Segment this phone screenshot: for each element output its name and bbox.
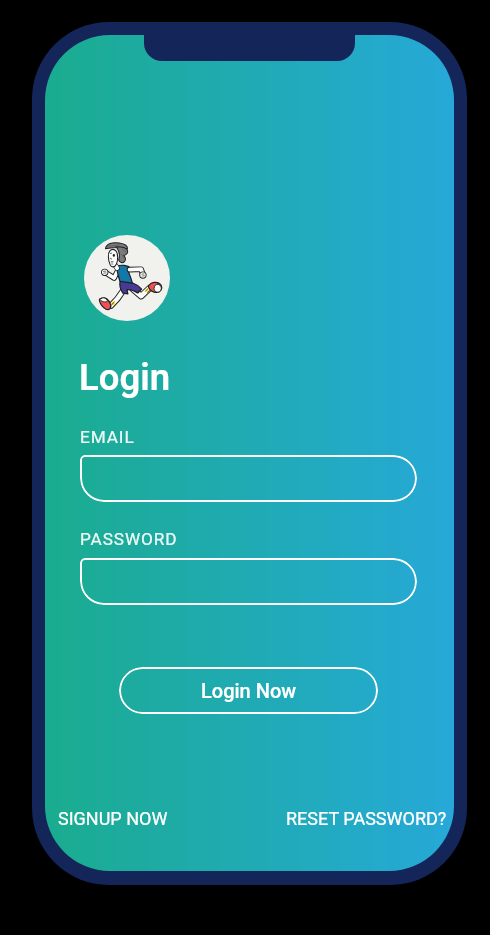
staticText: EMAIL	[80, 427, 135, 447]
staticText: PASSWORD	[80, 529, 178, 549]
staticText: Login	[79, 356, 171, 399]
button[interactable]: RESET PASSWORD?	[285, 806, 448, 831]
button[interactable]	[80, 455, 417, 502]
button[interactable]	[80, 558, 417, 605]
staticText: Login Now	[201, 679, 297, 702]
staticText: RESET PASSWORD?	[286, 808, 447, 829]
button[interactable]: SIGNUP NOW	[57, 806, 169, 831]
staticText: SIGNUP NOW	[58, 808, 168, 829]
other: App logo	[84, 235, 170, 321]
button[interactable]: Login Now	[119, 667, 378, 714]
